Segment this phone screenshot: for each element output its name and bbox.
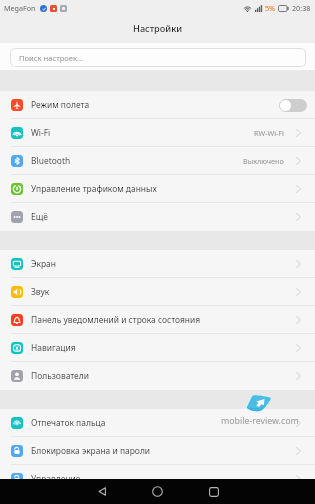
staticText: Режим полета bbox=[31, 99, 90, 111]
staticText: Отпечаток пальца bbox=[31, 417, 106, 429]
button[interactable]: Пользователи bbox=[0, 362, 315, 390]
button[interactable]: Отпечаток пальца bbox=[0, 409, 315, 437]
button[interactable]: Управление трафиком данных bbox=[0, 175, 315, 203]
button[interactable]: Звук bbox=[0, 278, 315, 306]
button[interactable]: Блокировка экрана и пароли bbox=[0, 437, 315, 465]
staticText: 20:38 bbox=[292, 3, 311, 13]
staticText: Bluetooth bbox=[31, 155, 71, 167]
button[interactable]: Поиск настроек... bbox=[10, 48, 306, 67]
button[interactable]: Wi-Fi bbox=[0, 119, 315, 147]
button[interactable]: Recents bbox=[200, 479, 228, 504]
staticText: Управление трафиком данных bbox=[31, 183, 157, 195]
staticText: Звук bbox=[31, 286, 50, 298]
button[interactable]: Экран bbox=[0, 250, 315, 278]
staticText: MegaFon bbox=[4, 3, 36, 13]
button[interactable]: Навигация bbox=[0, 334, 315, 362]
button[interactable]: Bluetooth bbox=[0, 147, 315, 175]
staticText: Выключено bbox=[243, 156, 284, 166]
button[interactable]: Режим полета bbox=[0, 91, 315, 119]
staticText: Поиск настроек... bbox=[19, 53, 84, 63]
staticText: Экран bbox=[31, 258, 56, 270]
staticText: Управление bbox=[31, 473, 81, 485]
button[interactable]: Ещё bbox=[0, 203, 315, 231]
staticText: mobile-review.com bbox=[221, 415, 299, 427]
button[interactable]: Панель уведомлений и строка состояния bbox=[0, 306, 315, 334]
staticText: 5% bbox=[265, 3, 276, 13]
staticText: Блокировка экрана и пароли bbox=[31, 445, 151, 457]
button[interactable]: Управление bbox=[0, 465, 315, 493]
staticText: Панель уведомлений и строка состояния bbox=[31, 314, 201, 326]
staticText: Wi-Fi bbox=[31, 127, 51, 139]
staticText: Навигация bbox=[31, 342, 76, 354]
button[interactable]: Home bbox=[143, 479, 171, 504]
staticText: RW-Wi-Fi bbox=[254, 128, 284, 138]
button[interactable]: Back bbox=[88, 479, 116, 504]
staticText: Ещё bbox=[31, 211, 48, 223]
staticText: Пользователи bbox=[31, 370, 89, 382]
staticText: Настройки bbox=[133, 22, 183, 35]
